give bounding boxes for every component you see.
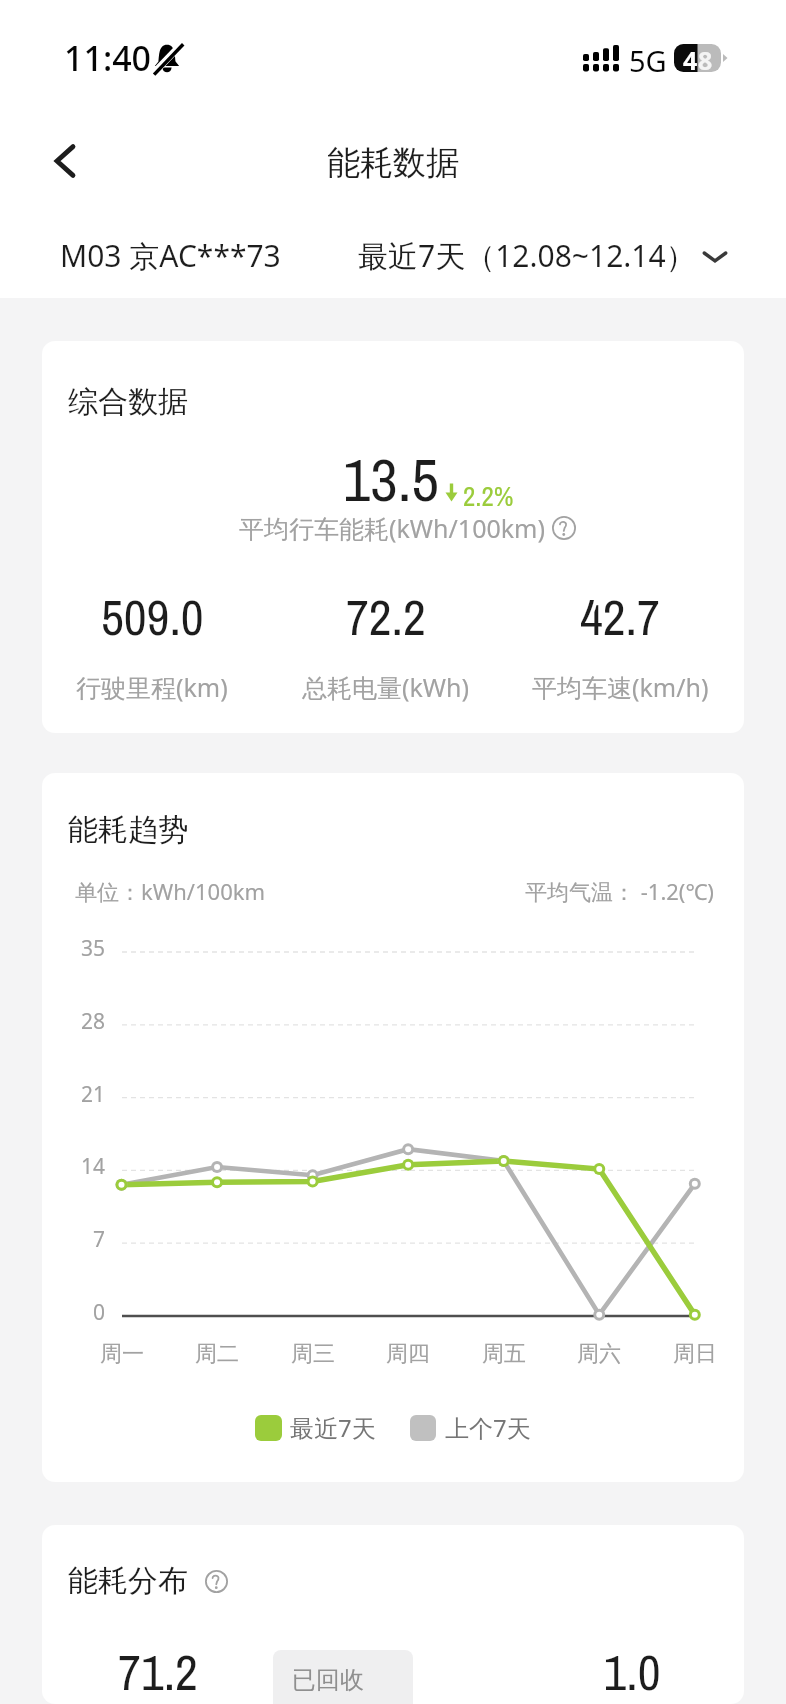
staticText: 5G <box>629 41 667 80</box>
staticText: 能耗趋势 <box>68 811 188 849</box>
staticText: 总耗电量(kWh) <box>302 670 470 704</box>
staticText: 上个7天 <box>445 1411 531 1444</box>
staticText: 1.0 <box>572 1638 692 1704</box>
staticText: 71.2 <box>98 1638 218 1704</box>
button[interactable]: Help <box>552 516 576 540</box>
staticText: 最近7天（12.08~12.14） <box>358 235 696 276</box>
staticText: 单位：kWh/100km <box>75 876 266 906</box>
staticText: 11:40 <box>64 35 152 81</box>
staticText: 能耗分布 <box>68 1562 188 1600</box>
staticText: 21 <box>62 1080 105 1109</box>
button[interactable]: Help <box>205 1570 228 1593</box>
staticText: 7 <box>62 1225 105 1254</box>
staticText: 平均车速(km/h) <box>532 670 709 704</box>
staticText: 已回收 <box>292 1665 364 1695</box>
staticText: 周四 <box>368 1340 448 1368</box>
staticText: 周三 <box>273 1340 353 1368</box>
button[interactable]: 最近7天（12.08~12.14） <box>358 235 730 276</box>
staticText: 行驶里程(km) <box>76 670 228 704</box>
staticText: 2.2% <box>463 478 514 514</box>
button[interactable]: M03 京AC***73 <box>60 235 281 276</box>
staticText: 35 <box>62 934 105 963</box>
staticText: 最近7天 <box>290 1411 376 1444</box>
staticText: 8 <box>698 43 713 71</box>
staticText: 509.0 <box>101 583 204 650</box>
staticText: 13.5 <box>343 439 439 520</box>
staticText: 平均行车能耗(kWh/100km) <box>239 511 545 545</box>
staticText: M03 京AC***73 <box>60 235 281 276</box>
staticText: 平均气温： -1.2(℃) <box>525 876 714 906</box>
staticText: 14 <box>62 1152 105 1181</box>
staticText: 周六 <box>559 1340 639 1368</box>
staticText: 4 <box>683 43 698 71</box>
staticText: 0 <box>62 1298 105 1327</box>
staticText: 42.7 <box>580 583 660 650</box>
staticText: 能耗数据 <box>327 142 459 184</box>
staticText: 周五 <box>464 1340 544 1368</box>
staticText: 72.2 <box>346 583 426 650</box>
staticText: 周一 <box>82 1340 162 1368</box>
staticText: 周二 <box>177 1340 257 1368</box>
button[interactable]: Back <box>36 132 94 190</box>
staticText: 综合数据 <box>68 383 188 421</box>
staticText: 周日 <box>655 1340 735 1368</box>
staticText: 28 <box>62 1007 105 1036</box>
